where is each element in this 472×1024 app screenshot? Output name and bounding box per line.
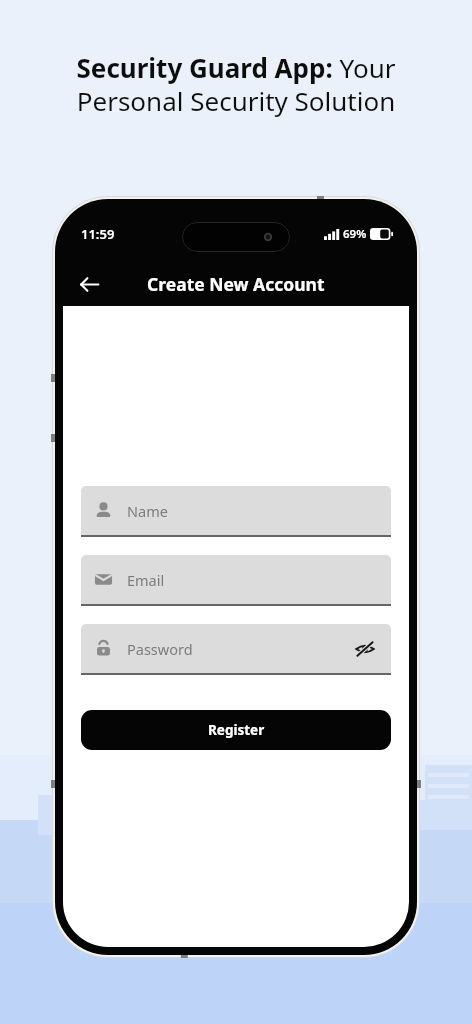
staticText: Register (208, 721, 265, 739)
staticText: Create New Account (147, 272, 325, 296)
staticText: Name (127, 501, 168, 521)
staticText: 11:59 (81, 225, 115, 243)
staticText: Security Guard App: Your Personal Securi… (20, 50, 452, 119)
button[interactable]: Back (69, 264, 109, 304)
button[interactable]: Name (81, 486, 391, 537)
button[interactable]: Toggle password visibility (352, 636, 378, 662)
staticText: 69% (343, 226, 367, 242)
button[interactable]: Password (81, 624, 391, 675)
button[interactable]: Register (81, 710, 391, 750)
button[interactable]: Email (81, 555, 391, 606)
staticText: Password (127, 639, 193, 659)
staticText: Email (127, 570, 165, 590)
